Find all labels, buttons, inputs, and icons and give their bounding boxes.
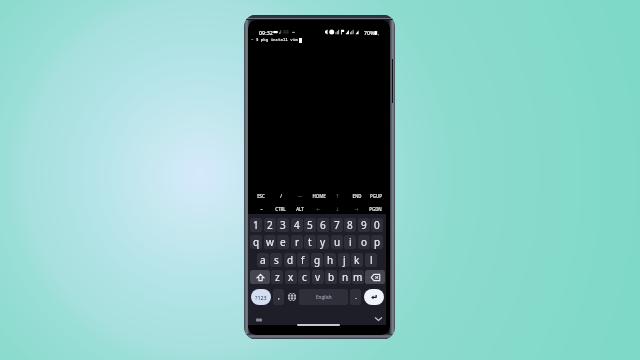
button[interactable]: PGUP <box>366 191 385 200</box>
button[interactable]: , <box>273 289 284 305</box>
button[interactable]: u <box>331 235 343 249</box>
staticText: e <box>280 235 286 249</box>
button[interactable]: 3 <box>277 218 289 232</box>
button[interactable]: — <box>290 191 309 200</box>
button[interactable]: d <box>284 253 296 267</box>
staticText: f <box>301 253 305 267</box>
button[interactable]: j <box>338 253 350 267</box>
button[interactable]: g <box>311 253 323 267</box>
button[interactable]: x <box>285 270 297 284</box>
button[interactable]: f <box>297 253 309 267</box>
button[interactable]: t <box>304 235 316 249</box>
staticText: → <box>354 206 359 212</box>
button[interactable]: ↓ <box>328 204 347 213</box>
staticText: 70% <box>364 29 375 36</box>
button[interactable]: s <box>270 253 282 267</box>
button[interactable]: 8 <box>344 218 356 232</box>
button[interactable]: ↑ <box>328 191 347 200</box>
button[interactable]: r <box>291 235 303 249</box>
button[interactable]: → <box>347 204 366 213</box>
button[interactable]: w <box>264 235 276 249</box>
button[interactable]: 5 <box>304 218 316 232</box>
staticText: t <box>308 235 312 249</box>
button[interactable]: o <box>358 235 370 249</box>
staticText: ← <box>316 206 321 212</box>
staticText: ↓ <box>335 206 340 212</box>
button[interactable]: English <box>299 289 348 305</box>
staticText: n <box>342 270 349 284</box>
button[interactable]: HOME <box>309 191 328 200</box>
button[interactable]: Enter <box>364 289 384 305</box>
button[interactable]: ALT <box>290 204 309 213</box>
button[interactable]: v <box>312 270 324 284</box>
staticText: l <box>370 253 373 267</box>
staticText: m <box>353 270 363 284</box>
button[interactable]: k <box>351 253 363 267</box>
staticText: ~ $ pkg install vim <box>251 37 298 43</box>
button[interactable]: a <box>257 253 269 267</box>
button[interactable]: 9 <box>358 218 370 232</box>
button[interactable]: ← <box>309 204 328 213</box>
button[interactable]: i <box>344 235 356 249</box>
button[interactable]: Change language <box>286 289 297 305</box>
staticText: PGUP <box>370 193 382 199</box>
button[interactable]: m <box>352 270 364 284</box>
button[interactable]: z <box>271 270 283 284</box>
button[interactable]: ~ <box>251 204 271 213</box>
staticText: c <box>302 270 307 284</box>
staticText: o <box>361 235 368 249</box>
staticText: r <box>295 235 300 249</box>
staticText: w <box>266 235 274 249</box>
staticText: b <box>328 270 335 284</box>
staticText: a <box>260 253 266 267</box>
button[interactable]: / <box>271 191 290 200</box>
staticText: 8 <box>347 218 353 232</box>
button[interactable]: PGDN <box>366 204 385 213</box>
staticText: HOME <box>312 193 326 199</box>
staticText: 6 <box>320 218 326 232</box>
button[interactable]: c <box>298 270 310 284</box>
staticText: PGDN <box>369 206 382 212</box>
staticText: . <box>355 292 357 302</box>
button[interactable]: 2 <box>264 218 276 232</box>
button[interactable]: Switch input method <box>254 316 263 323</box>
button[interactable]: ESC <box>251 191 271 200</box>
button[interactable]: 4 <box>291 218 303 232</box>
staticText: i <box>349 235 352 249</box>
button[interactable]: b <box>325 270 337 284</box>
staticText: 3 <box>280 218 286 232</box>
button[interactable]: Shift <box>250 270 270 284</box>
button[interactable]: ?123 <box>251 289 271 305</box>
button[interactable]: END <box>347 191 366 200</box>
staticText: / <box>280 193 282 199</box>
staticText: ALT <box>296 206 304 212</box>
staticText: q <box>253 235 260 249</box>
button[interactable]: p <box>371 235 383 249</box>
staticText: s <box>274 253 279 267</box>
staticText: y <box>320 235 326 249</box>
button[interactable]: n <box>339 270 351 284</box>
button[interactable]: l <box>365 253 377 267</box>
button[interactable]: Backspace <box>365 270 385 284</box>
button[interactable]: . <box>350 289 361 305</box>
staticText: ↑ <box>335 193 340 199</box>
button[interactable]: q <box>250 235 262 249</box>
staticText: 4 <box>294 218 300 232</box>
button[interactable]: 7 <box>331 218 343 232</box>
button[interactable]: Hide keyboard <box>374 315 383 323</box>
button[interactable]: 6 <box>317 218 329 232</box>
staticText: END <box>352 193 362 199</box>
button[interactable]: h <box>324 253 336 267</box>
button[interactable]: e <box>277 235 289 249</box>
staticText: u <box>334 235 341 249</box>
button[interactable]: 0 <box>371 218 383 232</box>
staticText: English <box>316 294 332 300</box>
staticText: ESC <box>257 193 265 199</box>
button[interactable]: 1 <box>250 218 262 232</box>
staticText: z <box>275 270 280 284</box>
button[interactable]: y <box>317 235 329 249</box>
staticText: v <box>315 270 321 284</box>
button[interactable]: CTRL <box>271 204 290 213</box>
staticText: 2 <box>267 218 273 232</box>
staticText: 0 <box>374 218 380 232</box>
